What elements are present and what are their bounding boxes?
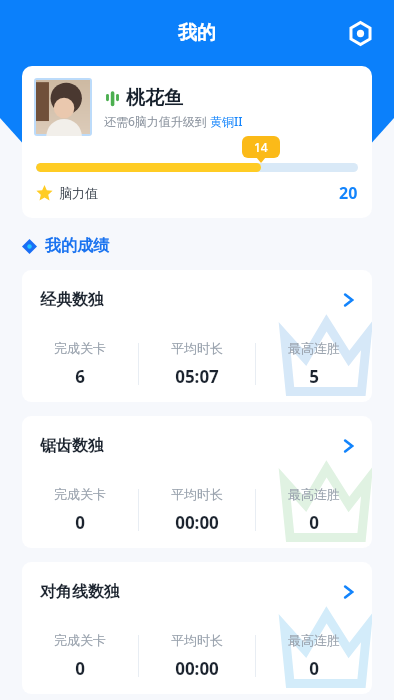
- staticText: 锯齿数独: [40, 436, 104, 456]
- staticText: 经典数独: [40, 290, 104, 310]
- button[interactable]: 锯齿数独: [22, 416, 372, 548]
- staticText: 我的成绩: [45, 236, 109, 256]
- staticText: 最高连胜: [288, 340, 340, 356]
- staticText: 0: [309, 511, 319, 534]
- staticText: 6: [75, 365, 85, 388]
- staticText: 平均时长: [171, 632, 223, 648]
- staticText: 最高连胜: [288, 632, 340, 648]
- staticText: 5: [309, 365, 319, 388]
- staticText: 我的: [178, 21, 216, 45]
- staticText: 20: [339, 182, 358, 204]
- staticText: 平均时长: [171, 340, 223, 356]
- staticText: 0: [75, 511, 85, 534]
- staticText: 脑力值: [59, 185, 98, 201]
- staticText: 对角线数独: [40, 582, 120, 602]
- staticText: 最高连胜: [288, 486, 340, 502]
- staticText: 14: [254, 139, 268, 155]
- button[interactable]: 经典数独: [22, 270, 372, 402]
- staticText: 0: [75, 657, 85, 680]
- staticText: 00:00: [175, 657, 219, 680]
- staticText: 05:07: [175, 365, 219, 388]
- staticText: 完成关卡: [54, 340, 106, 356]
- button[interactable]: 对角线数独: [22, 562, 372, 694]
- staticText: 还需6脑力值升级到: [104, 113, 210, 129]
- staticText: 平均时长: [171, 486, 223, 502]
- button[interactable]: 桃花鱼: [22, 66, 372, 218]
- staticText: 完成关卡: [54, 632, 106, 648]
- button[interactable]: Settings: [340, 13, 380, 53]
- staticText: 黄铜II: [210, 113, 243, 129]
- staticText: 0: [309, 657, 319, 680]
- staticText: 桃花鱼: [126, 86, 183, 110]
- staticText: 完成关卡: [54, 486, 106, 502]
- staticText: 00:00: [175, 511, 219, 534]
